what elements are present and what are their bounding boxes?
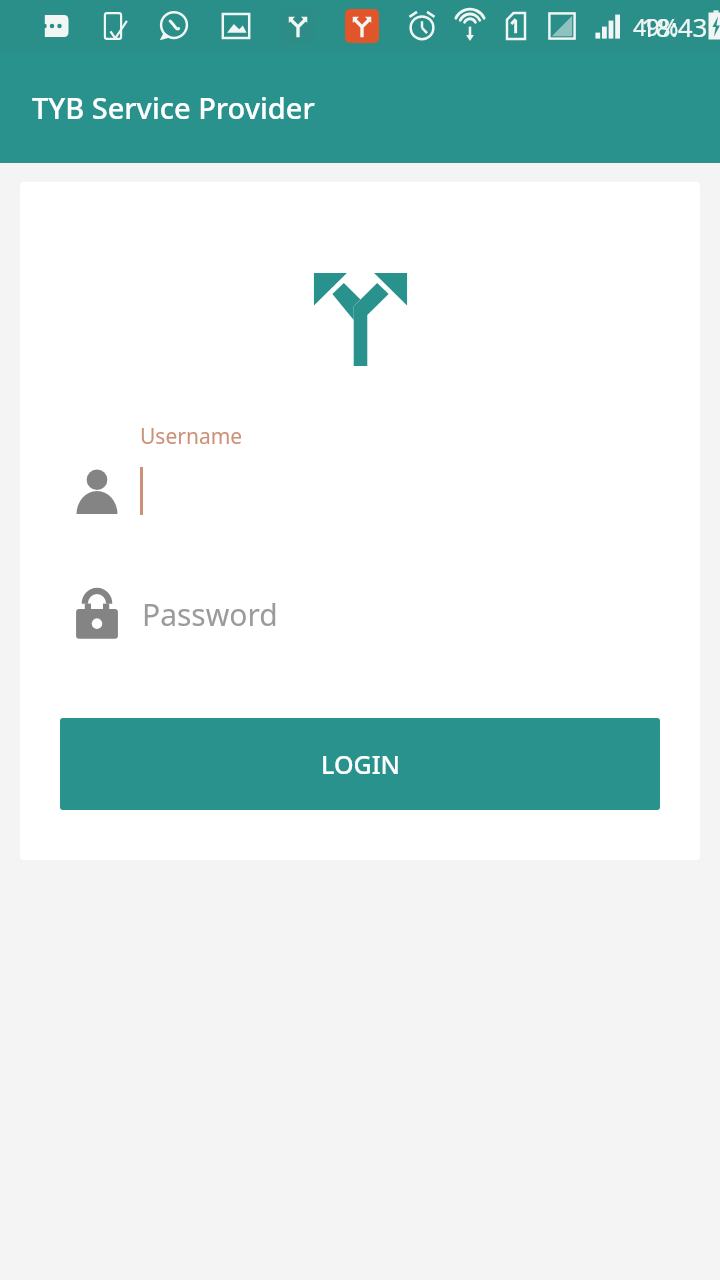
- staticText: LOGIN: [321, 747, 400, 781]
- staticText: 49%: [633, 11, 679, 42]
- other: App logo: [312, 270, 409, 366]
- button[interactable]: LOGIN: [60, 718, 660, 810]
- staticText: TYB Service Provider: [32, 88, 315, 127]
- button[interactable]: Username: [20, 422, 700, 515]
- staticText: Username: [140, 422, 243, 451]
- staticText: 18:43: [641, 9, 708, 44]
- staticText: Password: [142, 594, 278, 635]
- button[interactable]: Password: [20, 587, 700, 641]
